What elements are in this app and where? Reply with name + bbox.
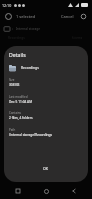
staticText: 12:10 bbox=[2, 3, 12, 8]
staticText: Recordings bbox=[21, 65, 39, 70]
staticText: › bbox=[12, 26, 14, 31]
staticText: Internal storage bbox=[16, 27, 41, 31]
staticText: Path bbox=[9, 128, 16, 132]
button[interactable]: OK bbox=[31, 164, 61, 173]
staticText: 2 files, 4 folders bbox=[9, 116, 33, 120]
staticText: /internal storage/Recordings bbox=[9, 133, 52, 137]
button[interactable]: More options bbox=[79, 12, 88, 21]
staticText: Dec 5 11:04 AM bbox=[9, 100, 33, 104]
staticText: 308 KB bbox=[9, 83, 20, 87]
staticText: Details bbox=[9, 51, 26, 58]
staticText: Size bbox=[9, 78, 15, 82]
button[interactable]: Recents bbox=[13, 186, 23, 196]
button[interactable]: Back bbox=[69, 186, 79, 196]
staticText: 6 items bbox=[72, 36, 83, 40]
staticText: Contains bbox=[9, 111, 21, 115]
button[interactable]: Home bbox=[41, 186, 51, 196]
button[interactable]: Select all bbox=[4, 12, 13, 21]
staticText: Recordings bbox=[8, 36, 25, 40]
staticText: 1 selected bbox=[16, 14, 35, 19]
staticText: Last modified bbox=[9, 95, 28, 99]
button[interactable]: Cancel bbox=[60, 14, 75, 19]
staticText: OK bbox=[43, 166, 49, 171]
staticText: Cancel bbox=[61, 14, 74, 19]
